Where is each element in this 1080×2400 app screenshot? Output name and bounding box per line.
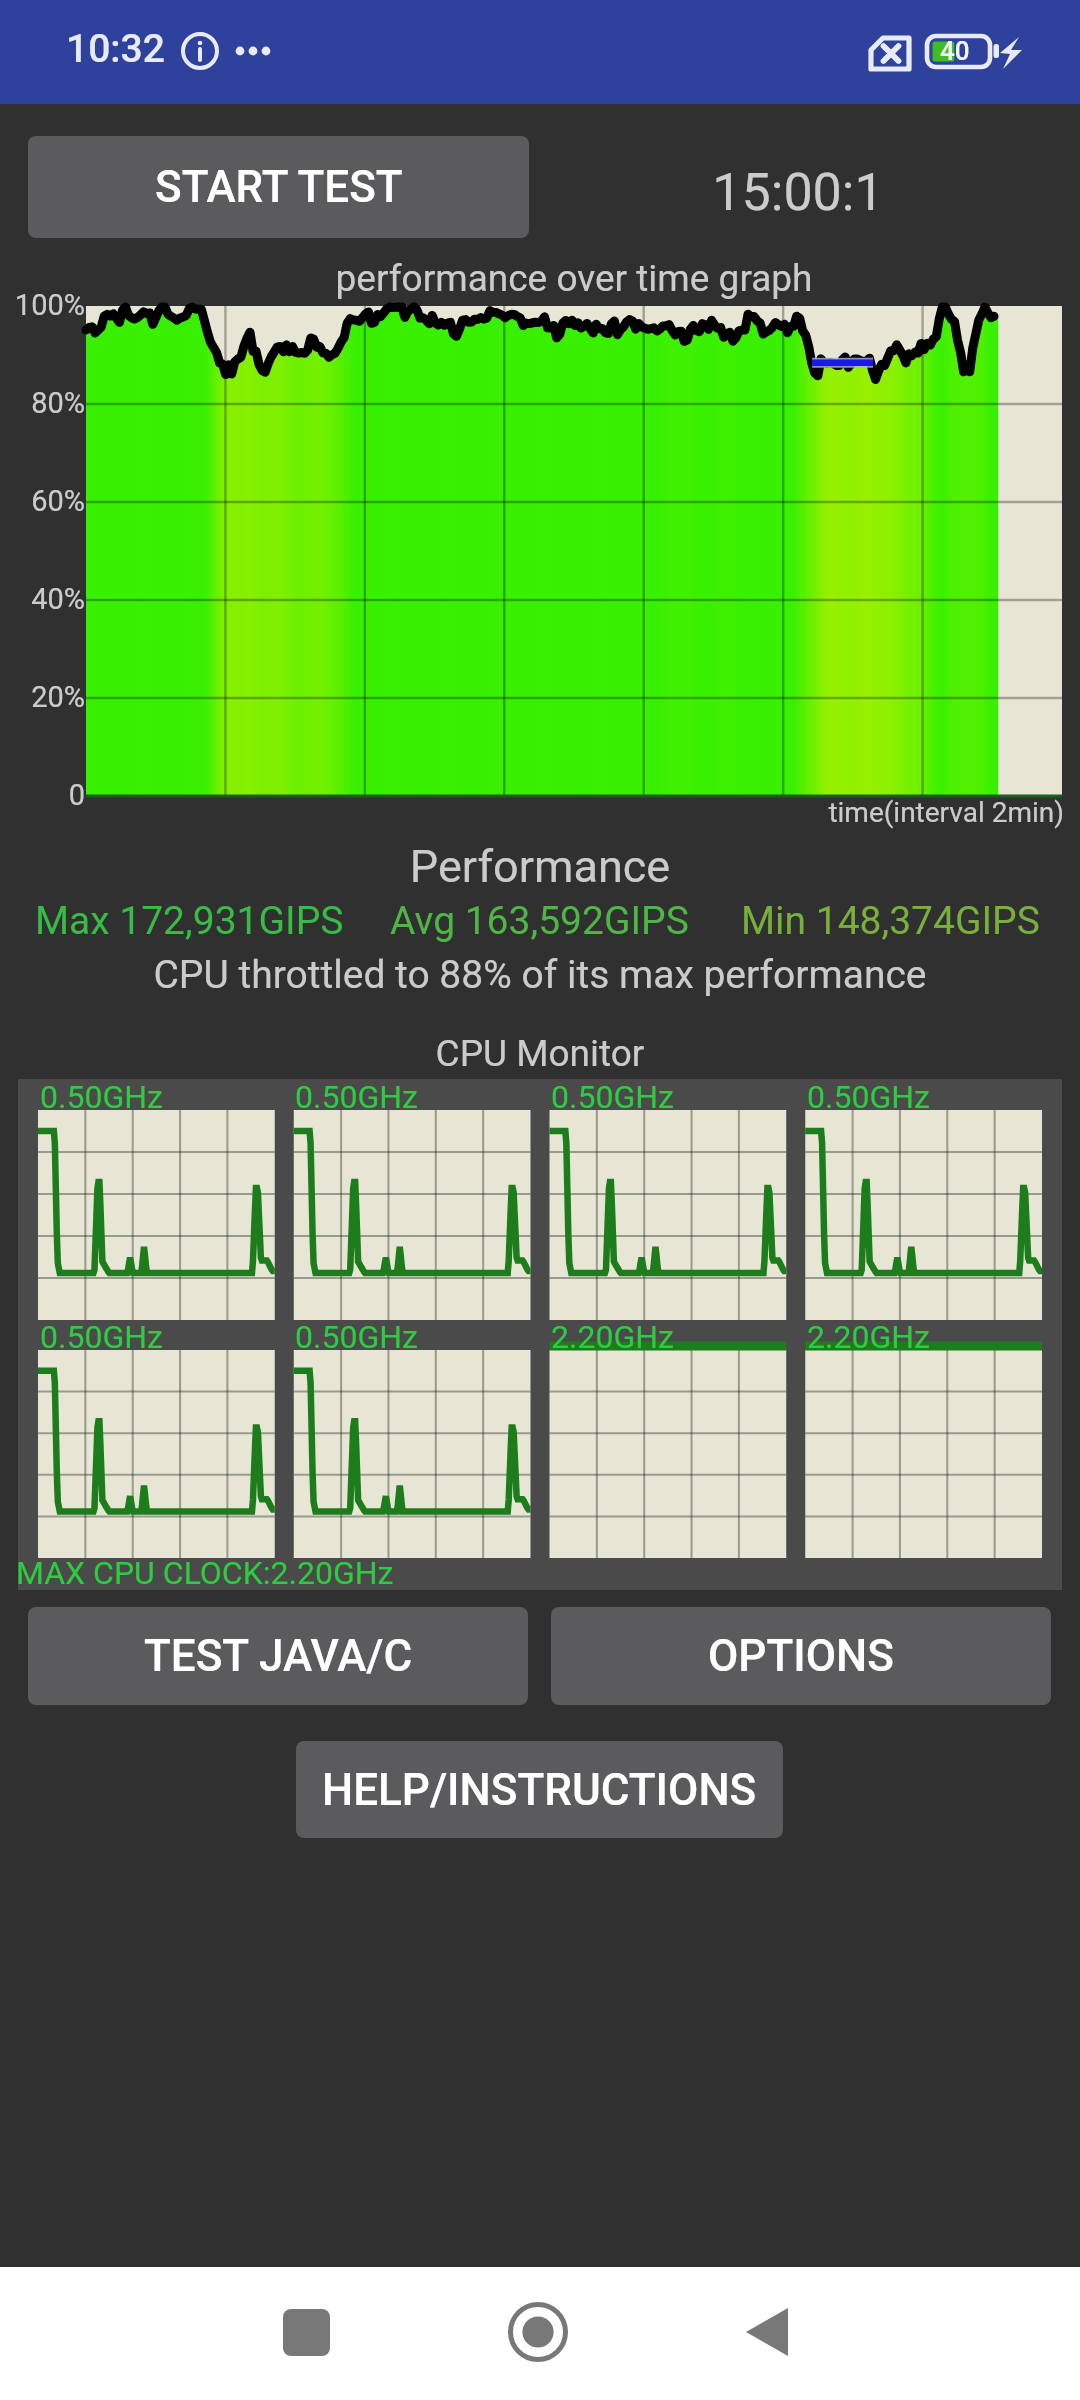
staticText: TEST JAVA/C bbox=[144, 1630, 413, 1682]
button[interactable]: Back bbox=[723, 2284, 819, 2380]
staticText: CPU Monitor bbox=[240, 1032, 840, 1075]
staticText: 0.50GHz bbox=[295, 1078, 418, 1116]
staticText: 0.50GHz bbox=[40, 1318, 163, 1356]
staticText: 100% bbox=[0, 288, 85, 322]
staticText: 0.50GHz bbox=[40, 1078, 163, 1116]
staticText: OPTIONS bbox=[708, 1630, 894, 1682]
staticText: 40% bbox=[0, 582, 85, 616]
button[interactable]: Home bbox=[490, 2284, 586, 2380]
staticText: Max 172,931GIPS bbox=[35, 898, 344, 944]
staticText: Performance bbox=[240, 840, 840, 893]
staticText: Min 148,374GIPS bbox=[741, 898, 1040, 944]
staticText: START TEST bbox=[155, 161, 403, 213]
staticText: 0.50GHz bbox=[551, 1078, 674, 1116]
button[interactable]: HELP/INSTRUCTIONS bbox=[296, 1741, 783, 1838]
staticText: 10:32 bbox=[66, 26, 165, 72]
staticText: 0.50GHz bbox=[807, 1078, 930, 1116]
button[interactable]: START TEST bbox=[28, 136, 529, 238]
staticText: 2.20GHz bbox=[807, 1318, 930, 1356]
button[interactable]: TEST JAVA/C bbox=[28, 1607, 528, 1705]
staticText: time(interval 2min) bbox=[764, 796, 1064, 829]
staticText: 60% bbox=[0, 484, 85, 518]
staticText: Avg 163,592GIPS bbox=[390, 898, 689, 944]
staticText: CPU throttled to 88% of its max performa… bbox=[90, 952, 990, 998]
staticText: 0.50GHz bbox=[295, 1318, 418, 1356]
staticText: 20% bbox=[0, 680, 85, 714]
staticText: HELP/INSTRUCTIONS bbox=[322, 1764, 757, 1816]
staticText: 40 bbox=[940, 36, 970, 66]
staticText: 0 bbox=[0, 778, 85, 812]
staticText: 80% bbox=[0, 386, 85, 420]
button[interactable]: OPTIONS bbox=[551, 1607, 1051, 1705]
button[interactable]: Recent apps bbox=[258, 2284, 354, 2380]
staticText: performance over time graph bbox=[224, 257, 924, 300]
staticText: 15:00:1 bbox=[598, 162, 998, 223]
staticText: MAX CPU CLOCK:2.20GHz bbox=[16, 1554, 394, 1592]
staticText: 2.20GHz bbox=[551, 1318, 674, 1356]
